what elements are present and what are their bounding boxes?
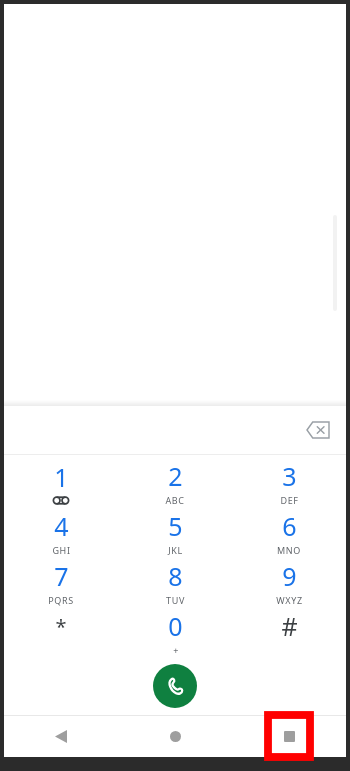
staticText: *: [55, 613, 67, 640]
staticText: 9: [282, 559, 297, 593]
button[interactable]: 4: [4, 507, 118, 557]
button[interactable]: 8: [118, 557, 232, 607]
button[interactable]: 0: [118, 607, 232, 657]
staticText: GHI: [52, 544, 71, 556]
button[interactable]: 1: [4, 457, 118, 507]
staticText: JKL: [168, 544, 183, 556]
button[interactable]: Recent apps: [266, 715, 312, 757]
button[interactable]: 5: [118, 507, 232, 557]
button[interactable]: Home: [118, 715, 232, 757]
staticText: WXYZ: [276, 594, 303, 606]
button[interactable]: #: [232, 607, 346, 657]
button[interactable]: 2: [118, 457, 232, 507]
staticText: +: [173, 644, 179, 656]
staticText: PQRS: [48, 594, 74, 606]
staticText: DEF: [280, 494, 299, 506]
staticText: 0: [168, 609, 183, 643]
staticText: 6: [282, 509, 297, 543]
button[interactable]: *: [4, 607, 118, 657]
staticText: ABC: [165, 494, 185, 506]
staticText: 7: [54, 559, 69, 593]
button[interactable]: 6: [232, 507, 346, 557]
button[interactable]: 3: [232, 457, 346, 507]
button[interactable]: Back: [4, 715, 118, 757]
button[interactable]: Call: [153, 664, 197, 708]
staticText: 4: [54, 509, 69, 543]
button[interactable]: 9: [232, 557, 346, 607]
button[interactable]: Delete: [300, 412, 336, 448]
staticText: 3: [282, 459, 297, 493]
staticText: 1: [54, 460, 69, 494]
staticText: 5: [168, 509, 183, 543]
staticText: 8: [168, 559, 183, 593]
staticText: MNO: [277, 544, 301, 556]
staticText: #: [281, 609, 298, 643]
staticText: TUV: [166, 594, 185, 606]
staticText: 2: [168, 459, 183, 493]
button[interactable]: 7: [4, 557, 118, 607]
